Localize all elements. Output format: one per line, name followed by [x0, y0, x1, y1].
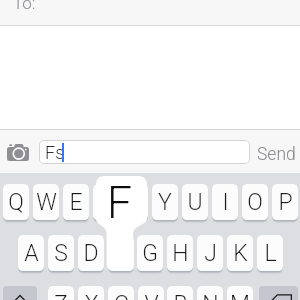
button[interactable]: W	[33, 184, 59, 220]
button[interactable]: C	[108, 286, 134, 300]
button[interactable]: X	[78, 286, 104, 300]
staticText: T	[128, 189, 142, 216]
button[interactable]: Y	[152, 184, 178, 220]
staticText: L	[264, 240, 277, 267]
button[interactable]: Z	[48, 286, 74, 300]
staticText: P	[278, 189, 293, 216]
staticText: A	[24, 240, 39, 267]
staticText: G	[142, 240, 158, 267]
button[interactable]: Take photo	[7, 144, 29, 161]
staticText: I	[222, 189, 229, 216]
button[interactable]: G	[137, 235, 163, 271]
button[interactable]: N	[197, 286, 223, 300]
staticText: W	[36, 189, 57, 216]
staticText: N	[202, 291, 219, 300]
button[interactable]: B	[167, 286, 193, 300]
button[interactable]: M	[227, 286, 253, 300]
staticText: K	[233, 240, 248, 267]
button[interactable]: U	[182, 184, 208, 220]
button[interactable]: P	[272, 184, 298, 220]
staticText: To:	[13, 0, 36, 13]
button[interactable]: A	[18, 235, 44, 271]
staticText: Q	[8, 189, 24, 216]
staticText: D	[83, 240, 99, 267]
staticText: Send	[257, 144, 296, 165]
button[interactable]: Backspace	[259, 286, 298, 300]
button[interactable]: S	[48, 235, 74, 271]
staticText: Z	[54, 291, 68, 300]
staticText: C	[114, 291, 129, 300]
button[interactable]: K	[227, 235, 253, 271]
button[interactable]: I	[212, 184, 238, 220]
staticText: M	[230, 291, 250, 300]
staticText: X	[84, 291, 99, 300]
button[interactable]: J	[197, 235, 223, 271]
button[interactable]: Fs	[39, 140, 250, 164]
button[interactable]: H	[167, 235, 193, 271]
button[interactable]: O	[242, 184, 268, 220]
staticText: Y	[158, 189, 172, 216]
button[interactable]: F	[108, 235, 134, 271]
button[interactable]: T	[122, 184, 148, 220]
button[interactable]: Shift	[3, 286, 37, 300]
staticText: B	[173, 291, 188, 300]
staticText: F	[107, 177, 133, 229]
staticText: V	[144, 291, 159, 300]
staticText: J	[204, 240, 217, 267]
button[interactable]: E	[63, 184, 89, 220]
button[interactable]: V	[138, 286, 164, 300]
staticText: Fs	[45, 142, 65, 163]
button[interactable]: To:	[0, 0, 300, 25]
button[interactable]: L	[257, 235, 283, 271]
staticText: S	[54, 240, 68, 267]
staticText: O	[247, 189, 263, 216]
staticText: H	[172, 240, 189, 267]
staticText: U	[187, 189, 203, 216]
button[interactable]: R	[93, 184, 119, 220]
button[interactable]: D	[78, 235, 104, 271]
staticText: R	[99, 189, 114, 216]
staticText: E	[69, 189, 83, 216]
button[interactable]: Q	[3, 184, 29, 220]
button[interactable]: Send	[257, 144, 296, 165]
